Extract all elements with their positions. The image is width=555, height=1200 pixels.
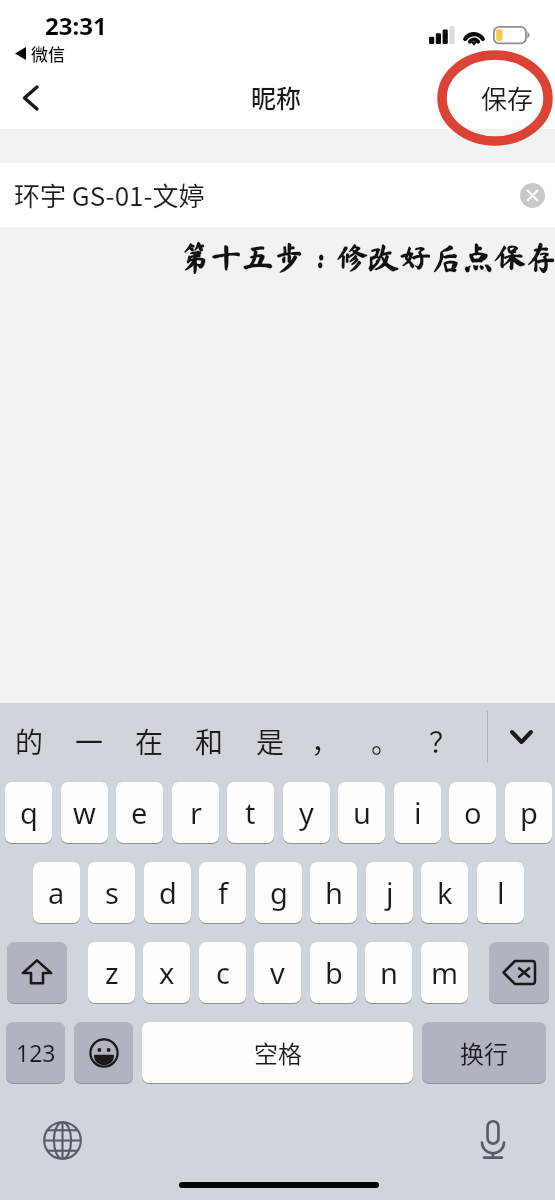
button[interactable]: k <box>421 862 468 923</box>
staticText: 在 <box>135 721 164 762</box>
button[interactable]: g <box>255 862 302 923</box>
button[interactable]: 微信 <box>15 41 65 66</box>
button[interactable]: d <box>144 862 191 923</box>
button[interactable]: f <box>199 862 246 923</box>
staticText: o <box>464 793 482 832</box>
button[interactable]: z <box>88 942 135 1003</box>
button[interactable]: u <box>338 782 385 843</box>
staticText: 保存 <box>481 79 534 117</box>
staticText: v <box>270 953 285 992</box>
button[interactable]: Switch keyboard language <box>38 1116 86 1164</box>
button[interactable]: ， <box>298 712 352 770</box>
button[interactable]: 一 <box>62 712 116 770</box>
staticText: ？ <box>429 721 458 762</box>
button[interactable]: 是 <box>243 712 297 770</box>
button[interactable]: Backspace <box>489 942 549 1003</box>
staticText: q <box>20 793 38 832</box>
button[interactable]: q <box>5 782 52 843</box>
button[interactable]: e <box>116 782 163 843</box>
button[interactable]: w <box>61 782 108 843</box>
staticText: 换行 <box>460 1035 508 1070</box>
staticText: 微信 <box>31 41 65 66</box>
button[interactable]: t <box>227 782 274 843</box>
button[interactable]: m <box>421 942 468 1003</box>
staticText: p <box>520 793 538 832</box>
button[interactable]: 环宇 GS-01-文婷 <box>0 163 555 227</box>
staticText: 空格 <box>254 1035 302 1070</box>
staticText: ， <box>311 721 340 762</box>
button[interactable]: Emoji <box>74 1022 133 1083</box>
button[interactable]: c <box>199 942 246 1003</box>
button[interactable]: j <box>366 862 413 923</box>
button[interactable]: h <box>310 862 357 923</box>
button[interactable]: Hide keyboard <box>497 713 546 760</box>
staticText: t <box>245 793 256 832</box>
staticText: r <box>190 793 202 832</box>
button[interactable]: 在 <box>122 712 176 770</box>
staticText: 123 <box>16 1037 56 1068</box>
staticText: 23:31 <box>45 9 107 42</box>
button[interactable]: a <box>33 862 80 923</box>
staticText: 一 <box>75 721 104 762</box>
staticText: f <box>218 873 228 912</box>
staticText: m <box>431 953 459 992</box>
button[interactable]: i <box>394 782 441 843</box>
staticText: l <box>497 873 505 912</box>
staticText: h <box>325 873 343 912</box>
button[interactable]: r <box>172 782 219 843</box>
button[interactable]: 保存 <box>470 69 545 127</box>
staticText: 。 <box>371 721 400 762</box>
button[interactable]: Back <box>0 69 60 127</box>
button[interactable]: 的 <box>2 712 56 770</box>
button[interactable]: Voice input <box>469 1116 517 1164</box>
staticText: d <box>159 873 177 912</box>
button[interactable]: 123 <box>6 1022 65 1083</box>
staticText: 是 <box>256 721 285 762</box>
button[interactable]: l <box>477 862 524 923</box>
staticText: n <box>380 953 398 992</box>
staticText: x <box>159 953 175 992</box>
button[interactable]: 空格 <box>142 1022 413 1083</box>
staticText: c <box>216 953 230 992</box>
staticText: 环宇 GS-01-文婷 <box>14 176 205 214</box>
button[interactable]: 。 <box>358 712 412 770</box>
button[interactable]: o <box>449 782 496 843</box>
staticText: s <box>105 873 119 912</box>
staticText: u <box>353 793 371 832</box>
button[interactable]: x <box>143 942 190 1003</box>
button[interactable]: b <box>310 942 357 1003</box>
staticText: w <box>73 793 96 832</box>
staticText: y <box>299 793 314 832</box>
button[interactable]: v <box>254 942 301 1003</box>
button[interactable]: s <box>88 862 135 923</box>
button[interactable]: 换行 <box>422 1022 546 1083</box>
button[interactable]: Shift <box>7 942 67 1003</box>
staticText: j <box>386 873 394 912</box>
button[interactable]: n <box>365 942 412 1003</box>
staticText: 的 <box>15 721 44 762</box>
button[interactable]: 和 <box>182 712 236 770</box>
staticText: b <box>325 953 343 992</box>
button[interactable]: y <box>283 782 330 843</box>
staticText: 昵称 <box>251 79 302 115</box>
button[interactable]: Clear text <box>513 176 551 214</box>
staticText: z <box>105 953 119 992</box>
staticText: i <box>414 793 422 832</box>
button[interactable]: ？ <box>416 712 470 770</box>
staticText: e <box>131 793 148 832</box>
staticText: k <box>437 873 453 912</box>
button[interactable]: p <box>505 782 552 843</box>
staticText: g <box>270 873 288 912</box>
staticText: a <box>48 873 65 912</box>
staticText: 和 <box>195 721 224 762</box>
staticText: 第十五步：修改好后点保存 <box>179 241 555 272</box>
